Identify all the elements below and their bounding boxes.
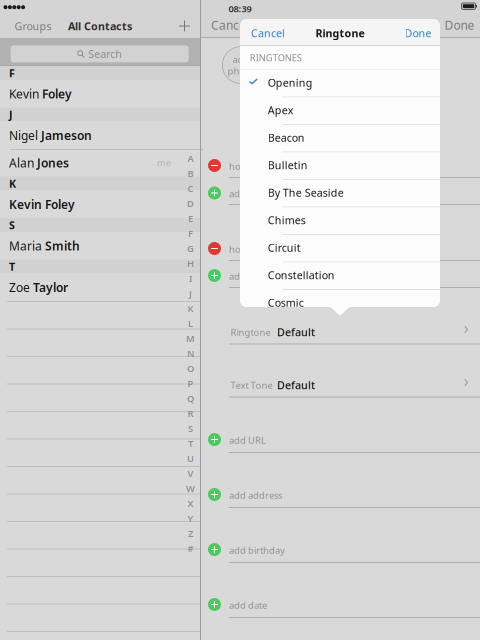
button[interactable]: Section index bbox=[184, 151, 196, 556]
staticText: add birthday bbox=[229, 544, 285, 556]
staticText: B bbox=[187, 167, 193, 180]
staticText: Done bbox=[404, 26, 431, 40]
staticText: RINGTONES bbox=[250, 51, 302, 64]
staticText: Zoe bbox=[9, 279, 33, 295]
staticText: Circuit bbox=[268, 240, 301, 255]
staticText: I bbox=[189, 272, 192, 285]
staticText: Apex bbox=[268, 103, 294, 117]
button[interactable]: Ringtone bbox=[200, 323, 480, 344]
staticText: Y bbox=[187, 512, 193, 525]
staticText: Text Tone bbox=[230, 379, 272, 391]
staticText: Smith bbox=[45, 238, 80, 254]
staticText: Jones bbox=[37, 155, 69, 171]
staticText: Search bbox=[88, 47, 122, 61]
staticText: add URL bbox=[229, 434, 266, 446]
staticText: N bbox=[187, 347, 194, 360]
staticText: W bbox=[186, 482, 195, 495]
staticText: Bulletin bbox=[268, 158, 308, 172]
button[interactable]: Bulletin bbox=[240, 152, 440, 180]
button[interactable]: add date bbox=[200, 596, 480, 617]
staticText: Nigel bbox=[9, 127, 41, 143]
staticText: Ringtone bbox=[230, 326, 270, 338]
staticText: By The Seaside bbox=[268, 185, 344, 200]
staticText: Default bbox=[277, 325, 315, 339]
staticText: S bbox=[9, 218, 15, 232]
staticText: G bbox=[187, 242, 194, 255]
button[interactable]: Alan bbox=[0, 149, 200, 176]
button[interactable]: add address bbox=[200, 486, 480, 507]
staticText: U bbox=[187, 452, 194, 465]
button[interactable]: Chimes bbox=[240, 207, 440, 235]
button[interactable]: Kevin bbox=[0, 190, 200, 218]
button[interactable]: Done bbox=[402, 23, 434, 43]
button[interactable]: Add photo bbox=[222, 47, 259, 84]
staticText: F bbox=[9, 66, 15, 80]
staticText: R bbox=[187, 407, 193, 420]
staticText: # bbox=[187, 542, 193, 555]
staticText: F bbox=[188, 227, 193, 240]
staticText: add phone bbox=[229, 270, 277, 282]
staticText: Chimes bbox=[268, 213, 306, 227]
staticText: home bbox=[229, 160, 255, 172]
staticText: Default bbox=[277, 378, 315, 392]
staticText: V bbox=[187, 467, 193, 480]
staticText: Beacon bbox=[268, 130, 305, 145]
staticText: Kevin bbox=[9, 196, 45, 212]
button[interactable]: add URL bbox=[200, 431, 480, 452]
staticText: T bbox=[9, 259, 15, 274]
button[interactable]: Text Tone bbox=[200, 376, 480, 397]
button[interactable]: Search bbox=[11, 45, 189, 62]
staticText: Foley bbox=[45, 196, 75, 212]
button[interactable]: Beacon bbox=[240, 125, 440, 152]
staticText: Maria bbox=[9, 238, 45, 254]
staticText: K bbox=[187, 302, 193, 315]
staticText: Cancel bbox=[211, 17, 249, 33]
button[interactable]: Kevin bbox=[0, 80, 200, 107]
staticText: L bbox=[188, 317, 193, 330]
staticText: J bbox=[189, 287, 192, 300]
staticText: H bbox=[187, 257, 194, 270]
staticText: Cosmic bbox=[268, 295, 304, 310]
staticText: Ringtone bbox=[315, 26, 364, 40]
staticText: C bbox=[187, 182, 193, 195]
staticText: Groups bbox=[14, 19, 51, 33]
button[interactable]: add birthday bbox=[200, 541, 480, 562]
staticText: me bbox=[157, 157, 171, 169]
staticText: add phone bbox=[229, 187, 277, 200]
staticText: 08:39 bbox=[228, 2, 251, 15]
staticText: J bbox=[9, 107, 13, 122]
button[interactable]: Add contact bbox=[173, 16, 195, 36]
staticText: T bbox=[188, 437, 193, 450]
button[interactable]: Cosmic bbox=[240, 290, 440, 317]
staticText: Taylor bbox=[33, 279, 68, 295]
button[interactable]: Cancel bbox=[250, 23, 286, 43]
button[interactable]: Circuit bbox=[240, 235, 440, 262]
staticText: S bbox=[188, 422, 193, 435]
staticText: A bbox=[187, 152, 193, 165]
button[interactable]: Opening bbox=[240, 70, 440, 97]
staticText: Cancel bbox=[251, 26, 285, 40]
staticText: Q bbox=[187, 392, 194, 405]
staticText: E bbox=[188, 212, 193, 225]
staticText: home bbox=[229, 243, 255, 255]
button[interactable]: Groups bbox=[13, 16, 53, 36]
staticText: add date bbox=[229, 599, 267, 611]
button[interactable]: Maria bbox=[0, 232, 200, 259]
staticText: Jameson bbox=[41, 127, 92, 143]
staticText: Z bbox=[188, 527, 193, 540]
button[interactable]: Cancel bbox=[208, 14, 252, 36]
staticText: K bbox=[9, 176, 16, 191]
staticText: D bbox=[187, 197, 194, 210]
button[interactable]: Apex bbox=[240, 97, 440, 125]
button[interactable]: Constellation bbox=[240, 262, 440, 290]
staticText: M bbox=[186, 332, 195, 345]
staticText: Foley bbox=[42, 86, 72, 102]
button[interactable]: Done bbox=[440, 14, 478, 36]
staticText: P bbox=[187, 377, 193, 390]
button[interactable]: By The Seaside bbox=[240, 180, 440, 207]
button[interactable]: Zoe bbox=[0, 273, 200, 301]
button[interactable]: Nigel bbox=[0, 121, 200, 149]
staticText: Opening bbox=[268, 75, 313, 90]
staticText: All Contacts bbox=[68, 19, 132, 33]
staticText: Alan bbox=[9, 155, 37, 171]
